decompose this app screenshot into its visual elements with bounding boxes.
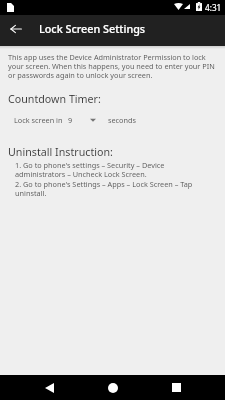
- staticText: 4:31: [205, 2, 222, 13]
- staticText: 9: [68, 115, 73, 125]
- staticText: seconds: [108, 115, 137, 125]
- staticText: Lock Screen Settings: [39, 21, 146, 36]
- staticText: Uninstall Instruction:: [8, 145, 113, 160]
- button[interactable]: Back: [3, 17, 28, 41]
- staticText: This app uses the Device Administrator P…: [8, 52, 216, 80]
- button[interactable]: Recents: [156, 375, 196, 400]
- button[interactable]: Back: [29, 375, 69, 400]
- staticText: 2. Go to phone's Settings – Apps – Lock …: [15, 179, 213, 198]
- staticText: Lock screen in: [14, 115, 63, 125]
- staticText: 1. Go to phone's settings – Security – D…: [15, 160, 213, 179]
- button[interactable]: Home: [93, 375, 133, 400]
- button[interactable]: Lock screen in: [0, 115, 225, 125]
- staticText: Countdown Timer:: [8, 92, 101, 107]
